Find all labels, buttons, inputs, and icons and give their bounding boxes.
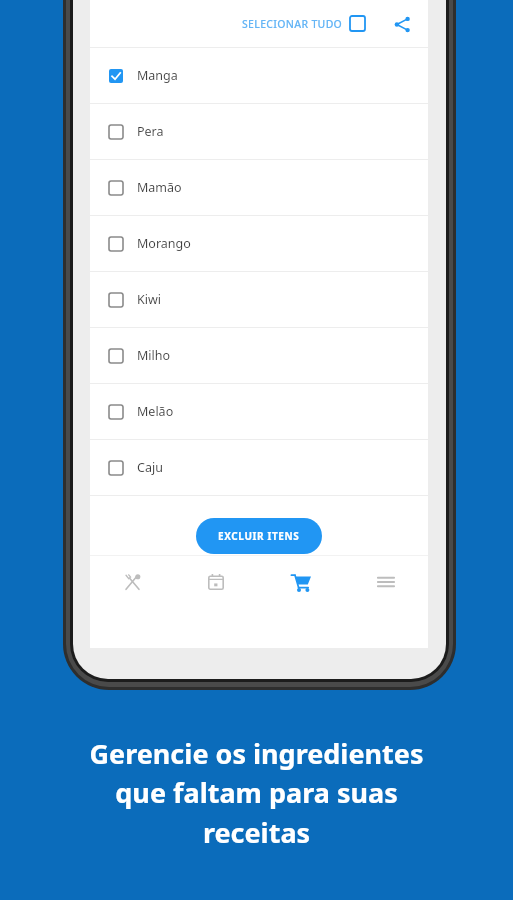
button[interactable]: Calendário — [174, 556, 258, 608]
staticText: Melão — [137, 403, 174, 420]
button[interactable]: Morango — [90, 216, 428, 271]
button[interactable]: Mamão — [90, 160, 428, 215]
button[interactable]: Menu — [343, 556, 428, 608]
button[interactable]: Compras — [258, 556, 343, 608]
staticText: EXCLUIR ITENS — [218, 529, 300, 543]
button[interactable]: Pera — [90, 104, 428, 159]
button[interactable]: Melão — [90, 384, 428, 439]
staticText: Caju — [137, 459, 163, 476]
staticText: Morango — [137, 235, 191, 252]
staticText: Kiwi — [137, 291, 162, 308]
staticText: Mamão — [137, 179, 182, 196]
button[interactable]: Milho — [90, 328, 428, 383]
staticText: Manga — [137, 67, 178, 84]
button[interactable]: SELECIONAR TUDO — [238, 10, 369, 37]
button[interactable]: EXCLUIR ITENS — [196, 518, 322, 554]
button[interactable]: Kiwi — [90, 272, 428, 327]
staticText: Pera — [137, 123, 164, 140]
staticText: Milho — [137, 347, 171, 364]
staticText: Gerencie os ingredientes que faltam para… — [24, 735, 489, 851]
button[interactable]: Manga — [90, 48, 428, 103]
button[interactable]: Compartilhar — [385, 7, 419, 41]
button[interactable]: Caju — [90, 440, 428, 495]
staticText: SELECIONAR TUDO — [242, 17, 343, 31]
button[interactable]: Receitas — [90, 556, 174, 608]
